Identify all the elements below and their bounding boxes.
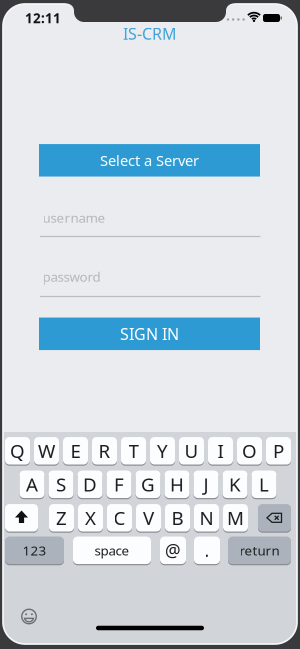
staticText: E (70, 438, 80, 463)
button[interactable]: . (194, 536, 220, 565)
button[interactable]: Q (5, 436, 30, 465)
button[interactable]: SIGN IN (39, 318, 260, 350)
button[interactable]: S (48, 470, 73, 499)
button[interactable]: C (107, 503, 132, 532)
staticText: C (113, 505, 125, 530)
staticText: N (199, 505, 213, 530)
button[interactable]: Select a Server (39, 144, 260, 177)
staticText: @ (165, 539, 181, 562)
button[interactable]: Y (150, 436, 175, 465)
staticText: R (98, 438, 110, 463)
staticText: T (128, 438, 138, 463)
button[interactable]: K (222, 470, 247, 499)
staticText: 123 (22, 541, 46, 559)
button[interactable]: U (179, 436, 204, 465)
button[interactable]: P (266, 436, 291, 465)
staticText: SIGN IN (120, 323, 179, 344)
staticText: F (114, 472, 124, 497)
button[interactable]: password (39, 257, 260, 297)
button[interactable]: E (63, 436, 88, 465)
button[interactable]: R (92, 436, 117, 465)
button[interactable]: W (34, 436, 59, 465)
button[interactable]: N (194, 503, 219, 532)
button[interactable]: X (78, 503, 103, 532)
button[interactable]: username (39, 197, 260, 237)
staticText: B (171, 505, 183, 530)
staticText: space (94, 541, 129, 559)
staticText: I (217, 438, 223, 463)
staticText: A (26, 472, 38, 497)
staticText: K (229, 472, 241, 497)
staticText: V (143, 505, 154, 530)
button[interactable]: G (135, 470, 160, 499)
staticText: P (273, 438, 284, 463)
staticText: W (38, 438, 55, 463)
button[interactable]: I (208, 436, 233, 465)
staticText: return (239, 541, 279, 559)
staticText: L (259, 472, 269, 497)
staticText: S (56, 472, 66, 497)
staticText: . (204, 539, 209, 562)
button[interactable]: @ (160, 536, 186, 565)
staticText: 12:11 (25, 9, 61, 27)
button[interactable]: H (164, 470, 189, 499)
staticText: O (242, 438, 257, 463)
button[interactable]: Shift (5, 503, 38, 532)
button[interactable]: space (73, 536, 151, 565)
staticText: password (42, 268, 100, 285)
staticText: U (184, 438, 198, 463)
button[interactable]: D (77, 470, 102, 499)
button[interactable]: L (251, 470, 276, 499)
button[interactable]: Emoji (15, 603, 42, 630)
staticText: D (83, 472, 97, 497)
button[interactable]: A (19, 470, 44, 499)
staticText: username (42, 209, 105, 226)
staticText: Z (56, 505, 67, 530)
staticText: H (170, 472, 184, 497)
button[interactable]: F (106, 470, 131, 499)
button[interactable]: Z (49, 503, 74, 532)
staticText: Select a Server (100, 151, 199, 170)
button[interactable]: V (136, 503, 161, 532)
button[interactable]: T (121, 436, 146, 465)
button[interactable]: B (165, 503, 190, 532)
staticText: M (227, 505, 244, 530)
staticText: X (85, 505, 96, 530)
staticText: Y (157, 438, 168, 463)
button[interactable]: O (237, 436, 262, 465)
button[interactable]: M (223, 503, 248, 532)
staticText: J (203, 472, 208, 497)
staticText: Q (10, 438, 25, 463)
button[interactable]: 123 (5, 536, 64, 565)
staticText: IS-CRM (123, 23, 177, 44)
button[interactable]: J (193, 470, 218, 499)
staticText: G (141, 472, 155, 497)
button[interactable]: return (228, 536, 291, 565)
button[interactable]: Delete (258, 503, 291, 532)
